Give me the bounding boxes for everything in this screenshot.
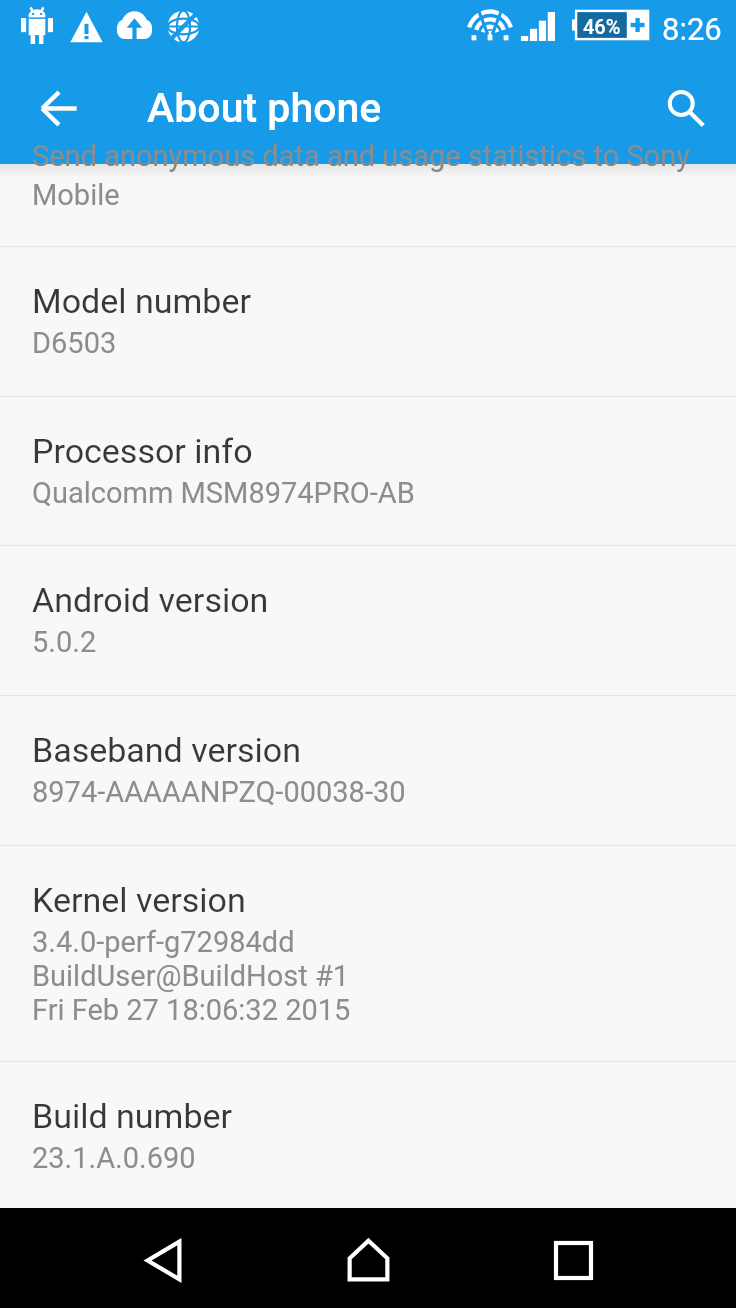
staticText: Qualcomm MSM8974PRO-AB <box>32 476 415 510</box>
staticText: 46% <box>583 15 621 38</box>
staticText: Kernel version <box>32 880 246 920</box>
staticText: D6503 <box>32 326 117 360</box>
staticText: Send anonymous data and usage statistics… <box>32 139 690 212</box>
button[interactable]: Build number <box>0 1062 736 1208</box>
staticText: Model number <box>32 281 251 321</box>
staticText: 8:26 <box>662 11 722 47</box>
staticText: About phone <box>147 84 382 132</box>
staticText: 5.0.2 <box>32 625 97 659</box>
staticText: BuildUser@BuildHost #1 <box>32 959 350 993</box>
button[interactable]: Back <box>93 1212 233 1308</box>
button[interactable]: Android version <box>0 546 736 695</box>
button[interactable]: Home <box>298 1212 438 1308</box>
button[interactable]: Baseband version <box>0 696 736 845</box>
button[interactable]: Kernel version <box>0 846 736 1061</box>
staticText: 8974-AAAAANPZQ-00038-30 <box>32 775 406 809</box>
staticText: 3.4.0-perf-g72984dd <box>32 925 295 959</box>
staticText: Fri Feb 27 18:06:32 2015 <box>32 993 351 1027</box>
button[interactable]: Back <box>3 52 115 164</box>
staticText: 23.1.A.0.690 <box>32 1141 196 1175</box>
staticText: Build number <box>32 1096 233 1136</box>
button[interactable]: Processor info <box>0 397 736 545</box>
button[interactable]: Search <box>631 52 736 164</box>
staticText: Processor info <box>32 431 253 471</box>
staticText: Baseband version <box>32 730 302 770</box>
staticText: Android version <box>32 580 269 620</box>
button[interactable]: Model number <box>0 247 736 396</box>
button[interactable]: Recent apps <box>503 1212 643 1308</box>
